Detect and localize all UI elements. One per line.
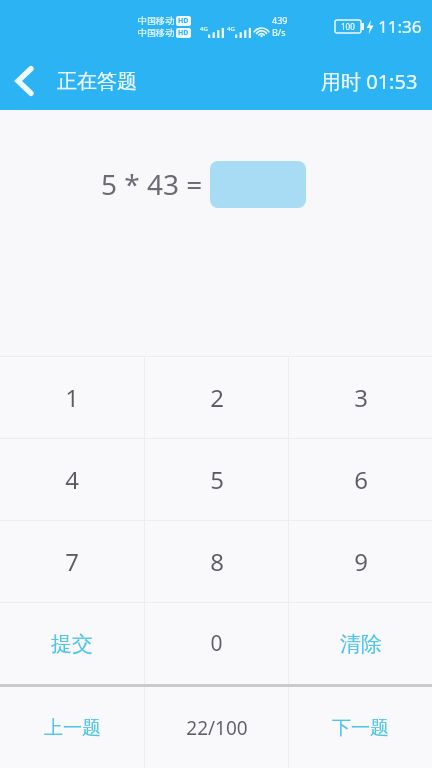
button[interactable]: Back — [0, 57, 48, 105]
staticText: 用时 01:53 — [321, 68, 418, 95]
staticText: 0 — [210, 629, 223, 658]
staticText: 4G — [227, 25, 235, 33]
staticText: 上一题 — [44, 716, 101, 740]
button[interactable]: 提交 — [0, 603, 144, 684]
staticText: 4G — [200, 25, 208, 33]
button[interactable]: 9 — [289, 521, 432, 602]
staticText: 6 — [354, 463, 368, 496]
staticText: 中国移动 — [138, 15, 174, 26]
button[interactable]: 3 — [289, 357, 432, 438]
staticText: 9 — [354, 545, 368, 578]
button[interactable]: 下一题 — [289, 687, 432, 768]
button[interactable]: 22/100 — [145, 687, 288, 768]
button[interactable]: 上一题 — [0, 687, 144, 768]
staticText: HD — [178, 16, 189, 26]
staticText: 下一题 — [332, 716, 389, 740]
staticText: B/s — [272, 26, 286, 38]
staticText: 2 — [210, 381, 224, 414]
button[interactable]: 清除 — [289, 603, 432, 684]
staticText: 5 * 43 = — [101, 165, 210, 203]
staticText: 中国移动 — [138, 27, 174, 38]
button[interactable] — [210, 161, 306, 208]
staticText: 11:36 — [378, 15, 422, 38]
staticText: 4 — [65, 463, 79, 496]
button[interactable]: 7 — [0, 521, 144, 602]
button[interactable]: 1 — [0, 357, 144, 438]
button[interactable]: 5 — [145, 439, 288, 520]
button[interactable]: 0 — [145, 603, 288, 684]
staticText: 5 — [210, 463, 224, 496]
staticText: 22/100 — [186, 715, 248, 741]
staticText: 3 — [354, 381, 368, 414]
staticText: 100 — [341, 21, 355, 32]
staticText: 提交 — [51, 631, 93, 657]
staticText: 439 — [272, 14, 288, 26]
staticText: HD — [178, 28, 189, 38]
button[interactable]: 4 — [0, 439, 144, 520]
staticText: 7 — [65, 545, 79, 578]
staticText: 正在答题 — [57, 69, 137, 94]
staticText: 清除 — [340, 631, 382, 657]
button[interactable]: 8 — [145, 521, 288, 602]
button[interactable]: 6 — [289, 439, 432, 520]
staticText: 1 — [65, 381, 79, 414]
button[interactable]: 2 — [145, 357, 288, 438]
staticText: 8 — [210, 545, 224, 578]
